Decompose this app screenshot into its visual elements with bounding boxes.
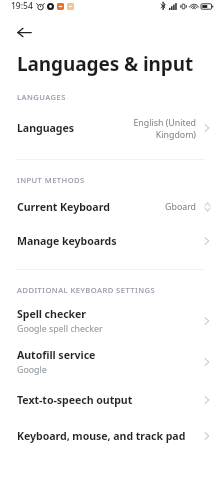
staticText: Keyboard, mouse, and track pad — [17, 429, 186, 443]
staticText: 19:54 — [11, 0, 33, 12]
staticText: Text-to-speech output — [17, 393, 133, 407]
staticText: ADDITIONAL KEYBOARD SETTINGS — [17, 285, 156, 295]
button[interactable]: Keyboard, mouse, and track pad — [0, 419, 222, 453]
staticText: Google — [17, 364, 47, 376]
staticText: LANGUAGES — [17, 92, 66, 102]
button[interactable]: Back — [9, 17, 39, 47]
staticText: Manage keyboards — [17, 234, 117, 248]
button[interactable]: Autofill service — [0, 341, 222, 383]
staticText: Current Keyboard — [17, 200, 110, 214]
button[interactable]: Spell checker — [0, 301, 222, 341]
button[interactable]: Text-to-speech output — [0, 383, 222, 417]
staticText: Autofill service — [17, 348, 96, 362]
button[interactable]: Languages — [0, 108, 222, 148]
button[interactable]: Current Keyboard — [0, 191, 222, 223]
staticText: Spell checker — [17, 307, 87, 321]
staticText: INPUT METHODS — [17, 175, 85, 185]
staticText: Languages & input — [17, 51, 194, 77]
staticText: Languages — [17, 121, 74, 135]
staticText: Gboard — [165, 201, 196, 213]
staticText: Google spell checker — [17, 323, 103, 335]
staticText: English (United Kingdom) — [133, 117, 196, 140]
button[interactable]: Manage keyboards — [0, 225, 222, 257]
